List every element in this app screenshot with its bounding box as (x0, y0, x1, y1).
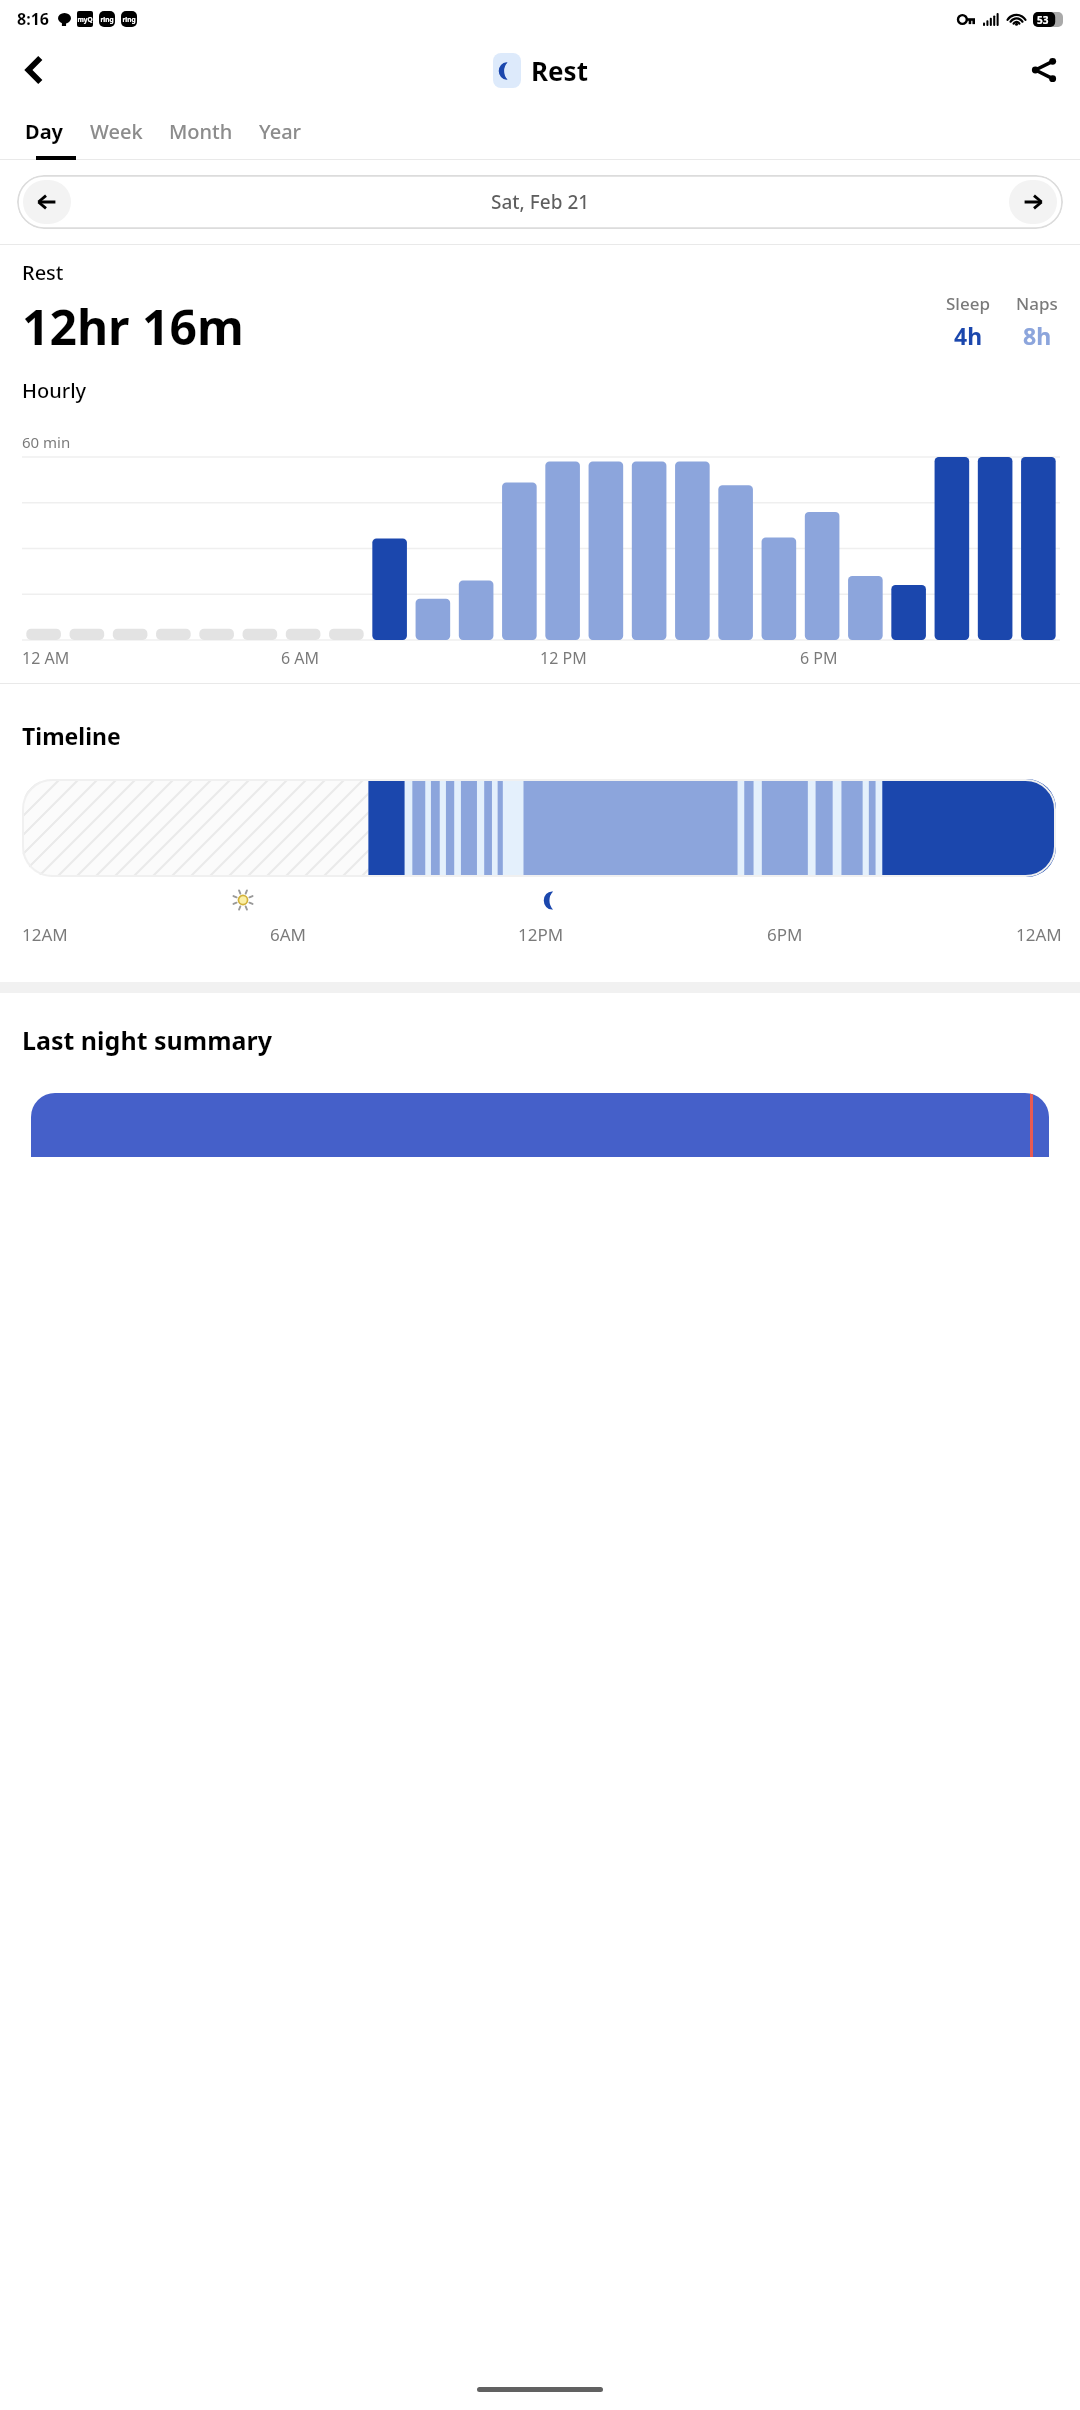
button[interactable]: Year (246, 104, 315, 159)
staticText: 6AM (270, 923, 307, 946)
staticText: Rest (22, 259, 64, 286)
staticText: ring (122, 15, 136, 24)
button[interactable]: Share (1018, 44, 1070, 96)
staticText: 12 AM (22, 647, 70, 669)
staticText: Hourly (22, 377, 87, 404)
button[interactable]: Previous day (23, 180, 71, 224)
staticText: Week (90, 118, 143, 145)
staticText: Timeline (22, 720, 121, 751)
staticText: Naps (1016, 292, 1058, 315)
button[interactable]: Month (156, 104, 246, 159)
staticText: 8:16 (17, 8, 49, 30)
staticText: 53 (1037, 13, 1049, 27)
button[interactable]: Day (12, 104, 77, 159)
staticText: 8h (1023, 320, 1052, 351)
staticText: 12hr 16m (22, 294, 244, 359)
staticText: myQ (77, 15, 93, 24)
button[interactable]: Back (8, 44, 60, 96)
staticText: Last night summary (22, 1023, 272, 1057)
staticText: Sat, Feb 21 (491, 189, 590, 215)
staticText: 12AM (22, 923, 68, 946)
button[interactable] (31, 1093, 1049, 1157)
staticText: 6PM (767, 923, 803, 946)
staticText: 60 min (22, 432, 71, 452)
staticText: 12AM (1016, 923, 1062, 946)
staticText: Year (259, 118, 302, 145)
staticText: ring (100, 15, 114, 24)
button[interactable]: Previous day (17, 175, 1063, 229)
staticText: 12PM (518, 923, 564, 946)
staticText: Month (169, 118, 233, 145)
staticText: 6 PM (800, 647, 838, 669)
staticText: Sleep (946, 292, 990, 315)
staticText: Rest (531, 53, 588, 88)
staticText: Day (25, 118, 64, 145)
staticText: 4h (954, 320, 983, 351)
button[interactable]: Next day (1009, 180, 1057, 224)
button[interactable]: Week (77, 104, 156, 159)
staticText: 6 AM (281, 647, 320, 669)
staticText: 12 PM (540, 647, 587, 669)
